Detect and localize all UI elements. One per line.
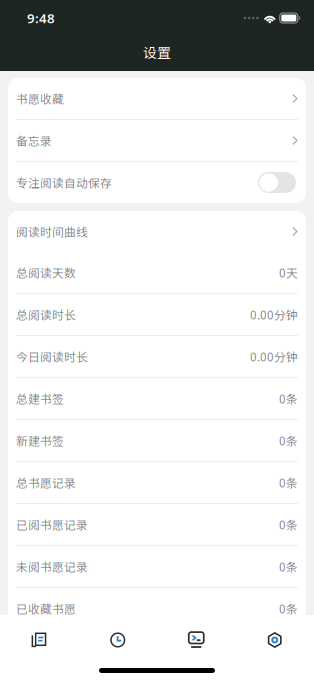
staticText: 0条 (279, 516, 298, 533)
staticText: 0.00分钟 (250, 348, 298, 365)
staticText: 0条 (279, 600, 298, 617)
button[interactable]: 阅读时长 (78, 625, 157, 655)
staticText: 总建书签 (16, 390, 64, 407)
staticText: 书愿收藏 (16, 90, 64, 107)
staticText: 0.00分钟 (250, 306, 298, 323)
button[interactable]: 专注阅读自动保存 (8, 162, 306, 203)
staticText: 未收藏书愿 (16, 642, 76, 659)
staticText: 新建书签 (16, 432, 64, 449)
staticText: 总阅读时长 (16, 306, 76, 323)
staticText: 今日阅读时长 (16, 348, 88, 365)
staticText: 0条 (279, 474, 298, 491)
staticText: 设置 (143, 42, 171, 62)
staticText: 备忘录 (16, 132, 52, 149)
button[interactable]: 书架 (0, 625, 78, 655)
button[interactable]: 设置 (235, 625, 314, 655)
staticText: 0条 (279, 558, 298, 575)
staticText: 总阅读天数 (16, 264, 76, 281)
staticText: 0条 (279, 642, 298, 659)
button[interactable]: 备忘录 (8, 120, 306, 161)
staticText: 专注阅读自动保存 (16, 174, 112, 191)
staticText: 阅读时间曲线 (16, 223, 88, 240)
button[interactable]: 阅读时间曲线 (8, 211, 306, 252)
staticText: 9:48 (27, 9, 55, 27)
staticText: 已收藏书愿 (16, 600, 76, 617)
button[interactable]: 日志 (157, 625, 235, 655)
staticText: 0天 (279, 264, 298, 281)
button[interactable]: 书愿收藏 (8, 78, 306, 119)
staticText: 0条 (279, 432, 298, 449)
staticText: 总书愿记录 (16, 474, 76, 491)
staticText: 0条 (279, 390, 298, 407)
staticText: 未阅书愿记录 (16, 558, 88, 575)
staticText: 已阅书愿记录 (16, 516, 88, 533)
